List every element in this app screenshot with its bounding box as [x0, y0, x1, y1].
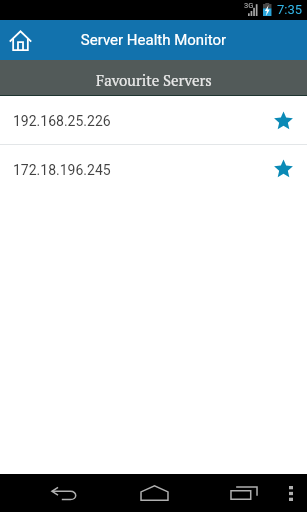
button[interactable]: 192.168.25.226 — [0, 96, 307, 144]
staticText: Server Health Monitor — [0, 31, 307, 49]
button[interactable]: More options — [277, 474, 305, 512]
button[interactable]: Favourite — [274, 111, 293, 130]
button[interactable]: Home — [134, 474, 174, 512]
staticText: 7:35 — [277, 2, 303, 17]
staticText: Favourite Servers — [96, 70, 212, 90]
staticText: 172.18.196.245 — [13, 162, 274, 178]
button[interactable]: Home — [9, 29, 31, 51]
staticText: 192.168.25.226 — [13, 113, 274, 129]
button[interactable]: Back — [44, 474, 84, 512]
button[interactable]: Recent apps — [224, 474, 264, 512]
button[interactable]: 172.18.196.245 — [0, 145, 307, 192]
button[interactable]: Favourite — [274, 159, 293, 178]
staticText: 3G — [244, 1, 254, 10]
